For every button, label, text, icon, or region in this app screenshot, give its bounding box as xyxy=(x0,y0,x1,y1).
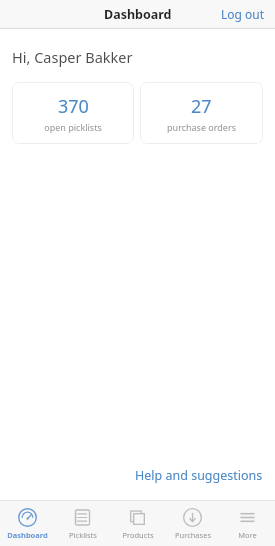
staticText: Log out xyxy=(221,6,265,22)
button[interactable]: 370 xyxy=(12,82,134,144)
staticText: Hi, Casper Bakker xyxy=(12,47,133,67)
button[interactable]: Products xyxy=(110,504,165,544)
button[interactable]: More xyxy=(220,504,275,544)
staticText: Dashboard xyxy=(104,6,172,23)
staticText: Products xyxy=(122,530,154,540)
button[interactable]: 27 xyxy=(140,82,263,144)
button[interactable]: Help and suggestions xyxy=(0,461,275,494)
staticText: Help and suggestions xyxy=(135,467,263,484)
staticText: Dashboard xyxy=(7,530,48,540)
staticText: open picklists xyxy=(44,121,102,133)
button[interactable]: Picklists xyxy=(55,504,110,544)
staticText: 370 xyxy=(58,94,89,119)
button[interactable]: Log out xyxy=(211,0,275,28)
staticText: Picklists xyxy=(69,530,97,540)
staticText: More xyxy=(238,530,257,540)
button[interactable]: Purchases xyxy=(165,504,220,544)
staticText: purchase orders xyxy=(167,121,236,133)
button[interactable]: Dashboard xyxy=(0,504,55,544)
staticText: 27 xyxy=(191,94,212,119)
staticText: Purchases xyxy=(175,530,211,540)
